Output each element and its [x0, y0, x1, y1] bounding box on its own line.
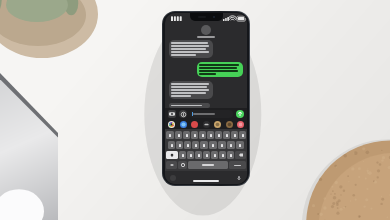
button[interactable]: return: [229, 161, 246, 169]
button[interactable]: App 0: [168, 121, 175, 128]
button[interactable]: H: [209, 141, 217, 149]
button[interactable]: L: [236, 141, 244, 149]
button[interactable]: Send: [236, 110, 244, 118]
button[interactable]: A: [168, 141, 175, 149]
button[interactable]: App 2: [191, 121, 198, 128]
button[interactable]: V: [203, 151, 210, 159]
button[interactable]: S: [176, 141, 183, 149]
button[interactable]: Z: [179, 151, 186, 159]
button[interactable]: N: [219, 151, 226, 159]
button[interactable]: App 5: [226, 121, 233, 128]
button[interactable]: [169, 81, 213, 99]
button[interactable]: num: [166, 161, 177, 169]
button[interactable]: T: [199, 131, 206, 139]
button[interactable]: delete: [235, 151, 246, 159]
button[interactable]: App 1: [180, 121, 187, 128]
button[interactable]: Y: [207, 131, 214, 139]
button[interactable]: [190, 110, 233, 118]
button[interactable]: P: [239, 131, 246, 139]
button[interactable]: F: [192, 141, 199, 149]
button[interactable]: [169, 103, 210, 108]
button[interactable]: J: [218, 141, 226, 149]
button[interactable]: Flashlight: [170, 175, 176, 181]
button[interactable]: W: [175, 131, 182, 139]
button[interactable]: I: [223, 131, 230, 139]
button[interactable]: shift: [166, 151, 178, 159]
button[interactable]: Q: [166, 131, 174, 139]
button[interactable]: [169, 40, 213, 58]
button[interactable]: [197, 62, 243, 77]
button[interactable]: M: [227, 151, 234, 159]
button[interactable]: App 4: [214, 121, 221, 128]
button[interactable]: Microphone: [236, 175, 242, 181]
button[interactable]: C: [195, 151, 202, 159]
button[interactable]: D: [184, 141, 191, 149]
button[interactable]: Camera: [168, 110, 176, 118]
button[interactable]: emoji: [178, 161, 187, 169]
button[interactable]: G: [200, 141, 208, 149]
button[interactable]: Contact avatar: [201, 25, 211, 35]
button[interactable]: R: [191, 131, 198, 139]
button[interactable]: O: [231, 131, 238, 139]
button[interactable]: U: [215, 131, 222, 139]
button[interactable]: K: [227, 141, 235, 149]
button[interactable]: B: [211, 151, 218, 159]
button[interactable]: E: [183, 131, 190, 139]
button[interactable]: App Store: [179, 110, 187, 118]
button[interactable]: X: [187, 151, 194, 159]
button[interactable]: space: [188, 161, 228, 169]
button[interactable]: App 6: [237, 121, 244, 128]
button[interactable]: App 3: [203, 121, 210, 128]
